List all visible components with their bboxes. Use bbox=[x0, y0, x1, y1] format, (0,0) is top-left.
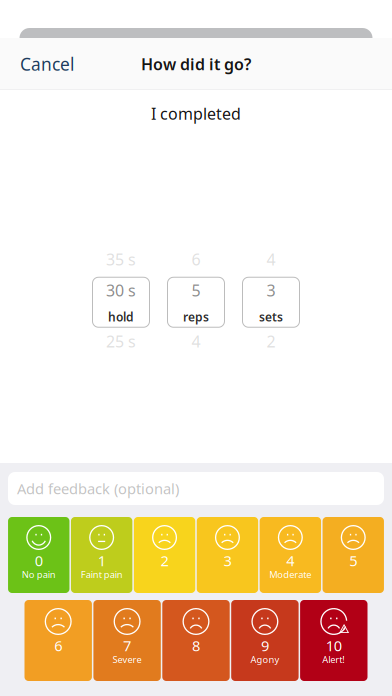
staticText: hold bbox=[108, 309, 134, 325]
button[interactable]: 10 bbox=[300, 600, 367, 681]
staticText: 2 bbox=[161, 551, 169, 570]
button[interactable]: 3 bbox=[197, 517, 258, 593]
button[interactable]: 6 bbox=[24, 600, 92, 681]
staticText: I completed bbox=[151, 103, 241, 124]
button[interactable]: 2 bbox=[134, 517, 195, 593]
staticText: sets bbox=[259, 309, 283, 325]
staticText: 30 s bbox=[106, 280, 136, 301]
staticText: 4 bbox=[191, 331, 200, 352]
button[interactable]: 4 bbox=[260, 517, 321, 593]
staticText: Moderate bbox=[269, 568, 311, 581]
button[interactable]: 35 s bbox=[92, 251, 149, 349]
staticText: reps bbox=[183, 309, 209, 325]
button[interactable]: 8 bbox=[162, 600, 230, 681]
button[interactable]: 9 bbox=[231, 600, 299, 681]
button[interactable]: 1 bbox=[71, 517, 132, 593]
staticText: Cancel bbox=[20, 52, 74, 75]
button[interactable]: 6 bbox=[167, 251, 224, 349]
button[interactable]: Cancel bbox=[0, 42, 94, 85]
staticText: 0 bbox=[35, 551, 43, 570]
staticText: Severe bbox=[113, 653, 142, 666]
staticText: 7 bbox=[123, 636, 131, 655]
button[interactable]: 0 bbox=[8, 517, 69, 593]
staticText: 3 bbox=[223, 551, 231, 570]
staticText: Add feedback (optional) bbox=[17, 479, 179, 498]
button[interactable]: 4 bbox=[242, 251, 299, 349]
staticText: 5 bbox=[349, 551, 357, 570]
staticText: 4 bbox=[286, 551, 294, 570]
button[interactable]: Add feedback (optional) bbox=[0, 472, 392, 505]
staticText: 5 bbox=[191, 280, 200, 301]
staticText: 2 bbox=[266, 331, 275, 352]
staticText: 4 bbox=[266, 249, 275, 270]
staticText: How did it go? bbox=[141, 53, 251, 75]
button[interactable]: 5 bbox=[323, 517, 384, 593]
staticText: 9 bbox=[261, 636, 269, 655]
staticText: 25 s bbox=[106, 331, 136, 352]
staticText: 6 bbox=[191, 249, 200, 270]
staticText: No pain bbox=[22, 568, 56, 581]
staticText: 3 bbox=[266, 280, 275, 301]
button[interactable]: 7 bbox=[93, 600, 161, 681]
staticText: Agony bbox=[250, 653, 279, 666]
staticText: Alert! bbox=[322, 653, 345, 666]
staticText: 10 bbox=[326, 636, 342, 655]
staticText: 35 s bbox=[106, 249, 136, 270]
staticText: 8 bbox=[192, 636, 200, 655]
staticText: Faint pain bbox=[81, 568, 123, 581]
staticText: 6 bbox=[54, 636, 62, 655]
staticText: 1 bbox=[98, 551, 106, 570]
